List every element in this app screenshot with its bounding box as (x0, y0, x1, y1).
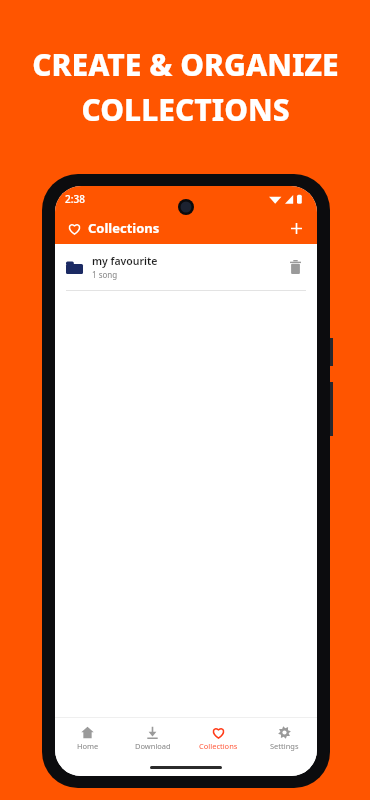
button[interactable]: Settings (251, 718, 317, 758)
staticText: Home (77, 741, 99, 751)
button[interactable]: Home (55, 718, 120, 758)
button[interactable]: Collections (185, 718, 251, 758)
staticText: Collections (88, 219, 160, 237)
staticText: Download (135, 741, 171, 751)
button[interactable]: Favourites (65, 219, 83, 237)
staticText: my favourite (92, 254, 158, 268)
staticText: Collections (199, 741, 238, 751)
staticText: CREATE & ORGANIZE (32, 44, 339, 85)
staticText: 1 song (92, 269, 118, 280)
button[interactable]: Delete collection (284, 256, 306, 278)
staticText: 2:38 (65, 192, 85, 206)
button[interactable]: Add collection (285, 217, 307, 239)
button[interactable]: my favourite (55, 244, 317, 290)
button[interactable]: Download (120, 718, 185, 758)
staticText: Settings (270, 741, 299, 751)
staticText: COLLECTIONS (81, 89, 290, 130)
